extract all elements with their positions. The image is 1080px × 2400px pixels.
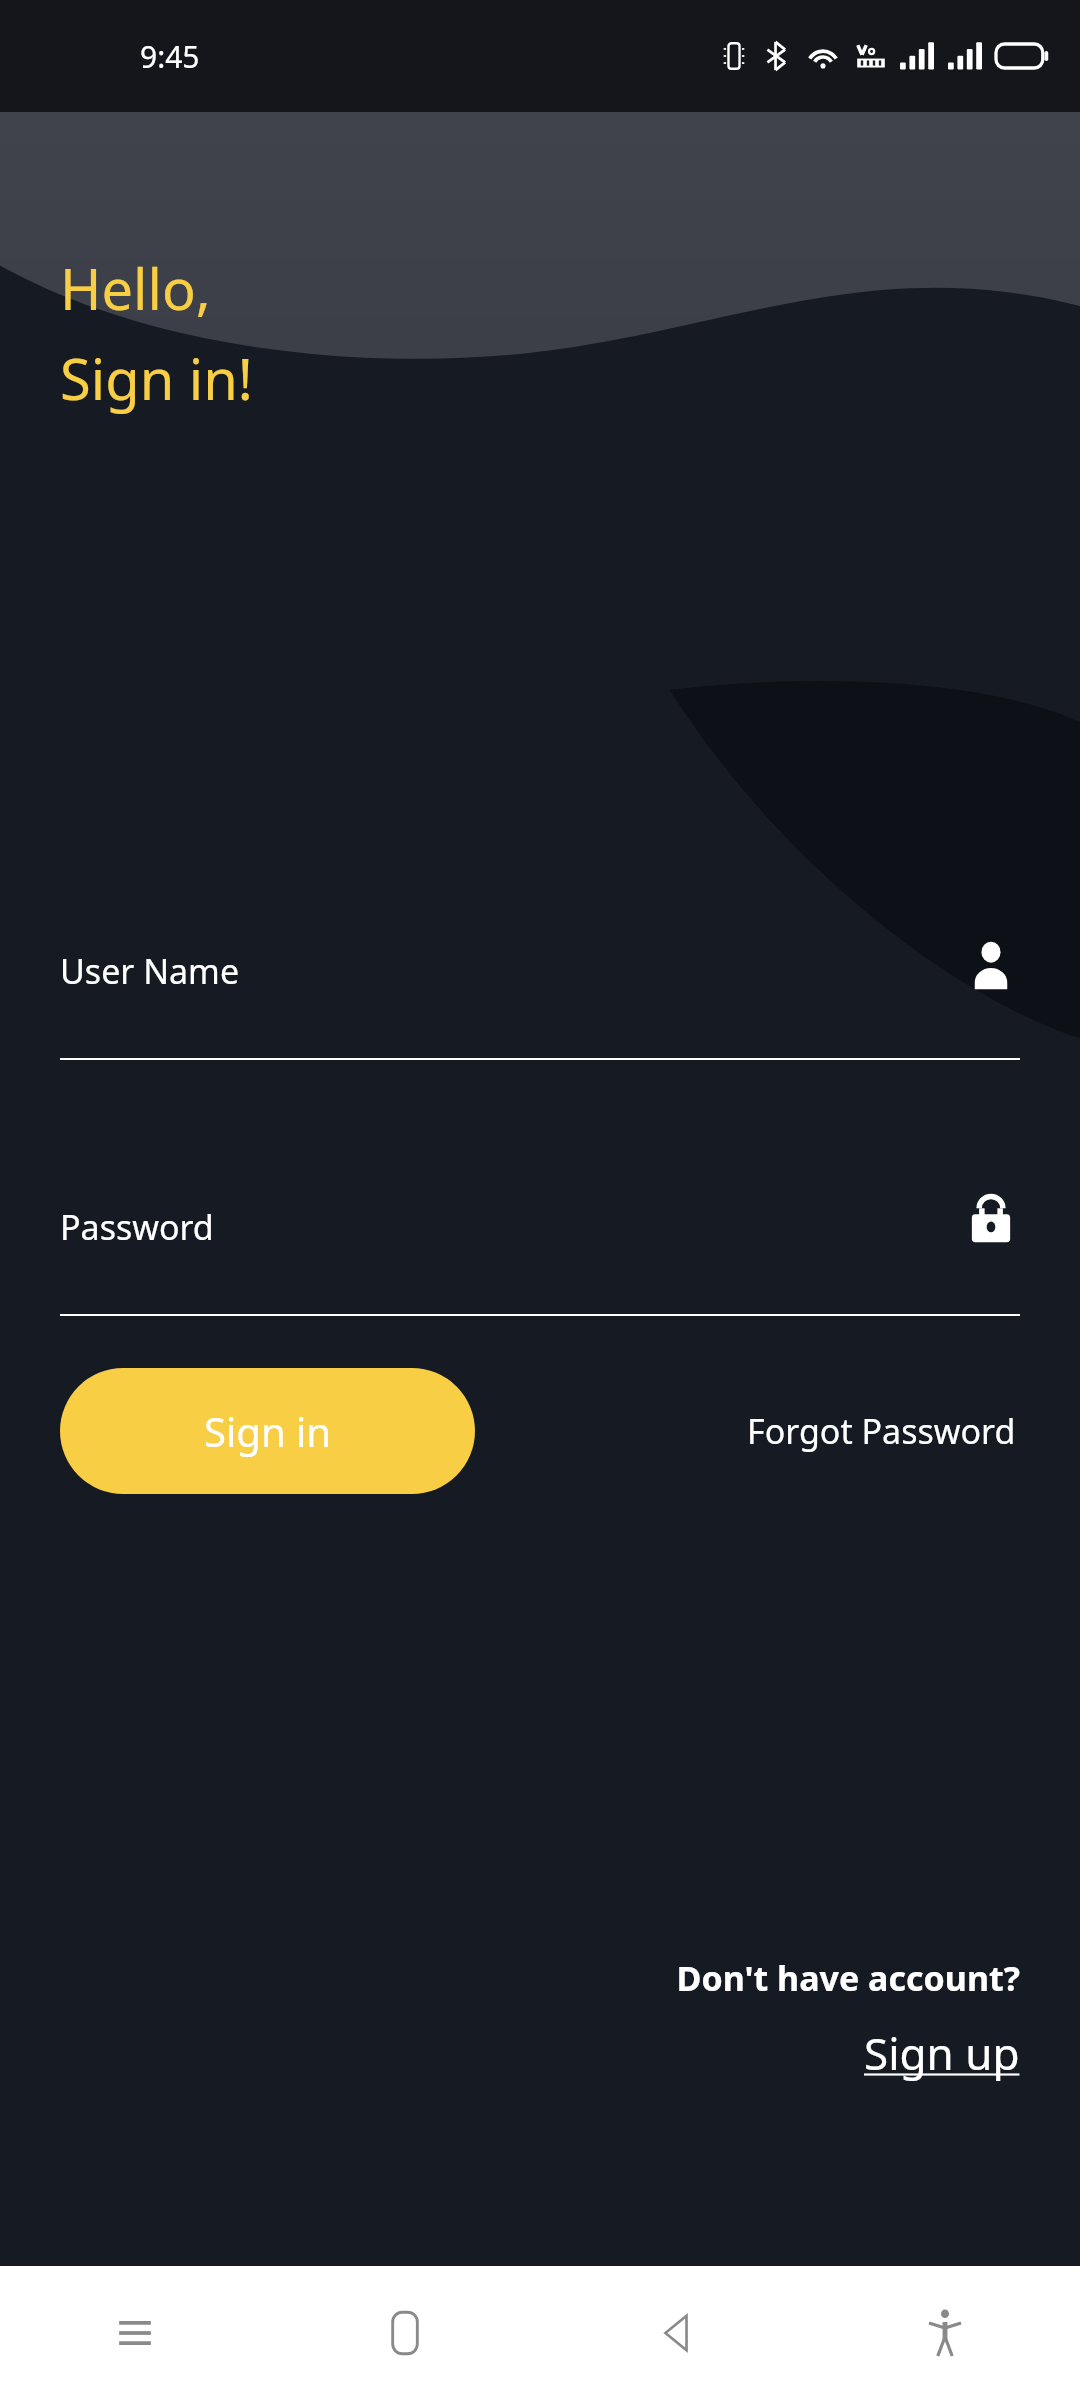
button[interactable]: Forgot Password: [743, 1392, 1020, 1470]
staticText: Sign in!: [60, 340, 253, 416]
button[interactable]: Password: [60, 1186, 1020, 1316]
staticText: Don't have account?: [676, 1955, 1020, 2001]
button[interactable]: User Name: [60, 930, 1020, 1060]
button[interactable]: Sign in: [60, 1368, 475, 1494]
staticText: Hello,: [60, 250, 211, 326]
staticText: 9:45: [140, 36, 200, 77]
other: Password: [962, 1190, 1020, 1248]
staticText: Forgot Password: [747, 1408, 1016, 1454]
other: User name: [962, 936, 1020, 994]
button[interactable]: Home: [270, 2266, 540, 2400]
staticText: Sign in: [204, 1404, 332, 1458]
button[interactable]: Recent apps: [0, 2266, 270, 2400]
button[interactable]: Back: [540, 2266, 810, 2400]
staticText: Sign up: [864, 2023, 1020, 2083]
staticText: User Name: [60, 948, 240, 994]
button[interactable]: Sign up: [864, 2023, 1020, 2083]
button[interactable]: Accessibility: [810, 2266, 1080, 2400]
staticText: Password: [60, 1204, 214, 1250]
